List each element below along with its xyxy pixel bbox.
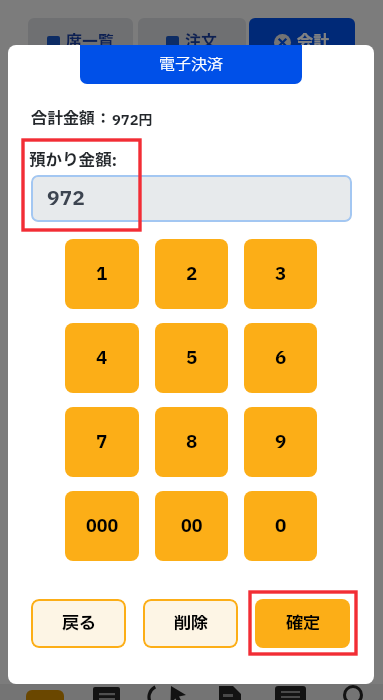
button[interactable]: 2 — [155, 239, 228, 309]
button[interactable]: 972 — [31, 175, 352, 222]
button[interactable]: 000 — [65, 491, 139, 561]
button[interactable]: 戻る — [31, 599, 126, 648]
staticText: 00 — [181, 514, 203, 539]
staticText: 000 — [86, 514, 119, 539]
staticText: 戻る — [62, 611, 96, 636]
staticText: 3 — [275, 261, 287, 288]
staticText: 972 — [47, 184, 85, 214]
staticText: 注文 — [185, 30, 218, 54]
staticText: 5 — [186, 345, 198, 372]
staticText: 2 — [186, 261, 198, 288]
staticText: 972円 — [112, 110, 153, 131]
button[interactable]: 7 — [65, 407, 139, 477]
staticText: 席一覧 — [66, 30, 115, 54]
staticText: 確定 — [286, 611, 320, 636]
staticText: 4 — [96, 345, 108, 372]
button[interactable]: 00 — [155, 491, 228, 561]
staticText: 0 — [275, 513, 287, 540]
button[interactable]: 8 — [155, 407, 228, 477]
staticText: 9 — [275, 429, 287, 456]
staticText: 7 — [96, 429, 108, 456]
button[interactable]: 1 — [65, 239, 139, 309]
button[interactable]: 注文 — [138, 18, 246, 66]
staticText: 8 — [186, 429, 198, 456]
button[interactable]: 席一覧 — [28, 18, 133, 66]
staticText: 合計金額： — [31, 107, 112, 131]
staticText: 電子決済 — [159, 53, 224, 77]
button[interactable]: 電子決済 — [80, 45, 302, 84]
staticText: 1 — [96, 261, 108, 288]
staticText: 会計 — [297, 30, 330, 54]
staticText: 預かり金額: — [29, 149, 118, 174]
staticText: 削除 — [174, 611, 208, 636]
button[interactable]: 確定 — [255, 599, 350, 648]
button[interactable]: 削除 — [143, 599, 238, 648]
button[interactable]: 9 — [244, 407, 317, 477]
button[interactable]: 4 — [65, 323, 139, 393]
button[interactable]: 会計 — [249, 18, 355, 66]
button[interactable]: 5 — [155, 323, 228, 393]
button[interactable]: 0 — [244, 491, 317, 561]
button[interactable]: 3 — [244, 239, 317, 309]
button[interactable]: 6 — [244, 323, 317, 393]
staticText: 6 — [275, 345, 287, 372]
